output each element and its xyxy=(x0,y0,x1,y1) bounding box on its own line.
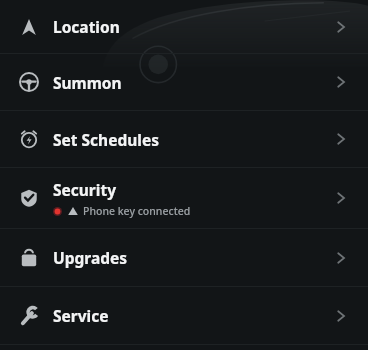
staticText: Phone key connected xyxy=(83,204,191,218)
button[interactable]: Security xyxy=(0,168,368,228)
button[interactable]: Upgrades xyxy=(0,229,368,286)
button[interactable]: Location xyxy=(0,0,368,53)
other: Open xyxy=(334,20,348,34)
other: Open xyxy=(334,251,348,265)
other: Open xyxy=(334,75,348,89)
other: Open xyxy=(334,309,348,323)
other: Open xyxy=(334,132,348,146)
button[interactable]: Service xyxy=(0,287,368,344)
button[interactable]: Set Schedules xyxy=(0,111,368,167)
staticText: Set Schedules xyxy=(53,129,159,150)
staticText: Summon xyxy=(53,72,122,93)
staticText: Service xyxy=(53,305,109,326)
other: Open xyxy=(334,191,348,205)
staticText: Location xyxy=(53,16,120,37)
staticText: Security xyxy=(53,179,117,200)
staticText: Upgrades xyxy=(53,247,128,268)
button[interactable]: Summon xyxy=(0,54,368,110)
